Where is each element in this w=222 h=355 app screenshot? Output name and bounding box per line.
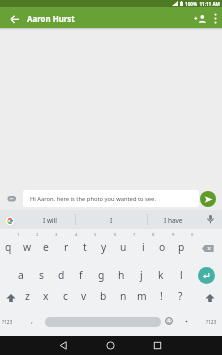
staticText: 1 bbox=[17, 232, 20, 238]
button[interactable]: s bbox=[30, 266, 52, 284]
staticText: 0 bbox=[191, 232, 194, 238]
button[interactable]: r bbox=[55, 238, 77, 256]
button[interactable]: 3 bbox=[45, 226, 67, 244]
button[interactable]: f bbox=[70, 266, 92, 284]
staticText: t bbox=[83, 240, 87, 254]
button[interactable] bbox=[45, 317, 161, 327]
button[interactable]: ?123 bbox=[200, 313, 222, 331]
staticText: u bbox=[120, 240, 127, 254]
button[interactable] bbox=[56, 338, 71, 353]
button[interactable] bbox=[4, 292, 18, 306]
staticText: a bbox=[18, 268, 24, 282]
staticText: k bbox=[158, 268, 164, 282]
staticText: p bbox=[178, 240, 185, 254]
button[interactable]: l bbox=[170, 266, 192, 284]
staticText: 6 bbox=[114, 232, 117, 238]
button[interactable]: b bbox=[92, 287, 114, 305]
staticText: ? bbox=[178, 289, 183, 303]
staticText: 4 bbox=[75, 232, 78, 238]
button[interactable]: e bbox=[35, 238, 57, 256]
button[interactable]: p bbox=[170, 238, 192, 256]
staticText: h bbox=[118, 268, 125, 282]
button[interactable] bbox=[203, 292, 217, 306]
staticText: g bbox=[98, 268, 105, 282]
staticText: I have bbox=[164, 216, 183, 225]
button[interactable]: 9 bbox=[162, 226, 184, 244]
button[interactable]: w bbox=[16, 238, 38, 256]
button[interactable]: I bbox=[100, 211, 122, 229]
button[interactable] bbox=[209, 11, 221, 27]
button[interactable] bbox=[7, 195, 17, 203]
button[interactable]: 2 bbox=[26, 226, 48, 244]
staticText: , bbox=[31, 316, 33, 326]
button[interactable]: k bbox=[150, 266, 172, 284]
staticText: j bbox=[140, 268, 143, 282]
staticText: Aaron Hurst bbox=[27, 14, 75, 25]
staticText: 5 bbox=[94, 232, 97, 238]
staticText: 2 bbox=[36, 232, 39, 238]
staticText: y bbox=[101, 240, 107, 254]
staticText: I will bbox=[43, 216, 58, 225]
button[interactable]: j bbox=[130, 266, 152, 284]
button[interactable] bbox=[150, 338, 165, 353]
staticText: 7 bbox=[133, 232, 136, 238]
button[interactable] bbox=[203, 212, 218, 227]
button[interactable]: 7 bbox=[123, 226, 145, 244]
button[interactable]: n bbox=[112, 287, 134, 305]
button[interactable]: 5 bbox=[84, 226, 106, 244]
button[interactable]: z bbox=[16, 287, 38, 305]
button[interactable]: 4 bbox=[65, 226, 87, 244]
button[interactable]: q bbox=[0, 238, 19, 256]
button[interactable]: 1 bbox=[7, 226, 29, 244]
button[interactable]: 0 bbox=[181, 226, 203, 244]
button[interactable]: u bbox=[112, 238, 134, 256]
staticText: i bbox=[142, 240, 145, 254]
staticText: z bbox=[25, 289, 30, 303]
button[interactable]: ! bbox=[150, 287, 172, 305]
staticText: m bbox=[137, 289, 147, 303]
button[interactable]: y bbox=[93, 238, 115, 256]
button[interactable]: o bbox=[151, 238, 173, 256]
button[interactable]: h bbox=[110, 266, 132, 284]
button[interactable] bbox=[198, 267, 215, 284]
button[interactable]: ?123 bbox=[0, 313, 18, 331]
staticText: l bbox=[180, 268, 183, 282]
staticText: 8 bbox=[152, 232, 155, 238]
staticText: o bbox=[159, 240, 166, 254]
button[interactable] bbox=[103, 338, 118, 353]
button[interactable] bbox=[200, 191, 216, 207]
staticText: 9 bbox=[172, 232, 175, 238]
staticText: ! bbox=[160, 289, 163, 303]
button[interactable]: t bbox=[74, 238, 96, 256]
button[interactable]: 8 bbox=[142, 226, 164, 244]
button[interactable] bbox=[7, 11, 23, 25]
button[interactable]: x bbox=[35, 287, 57, 305]
button[interactable]: Hi Aaron, here is the photo you wanted t… bbox=[23, 190, 199, 207]
staticText: v bbox=[81, 289, 87, 303]
button[interactable]: m bbox=[131, 287, 153, 305]
button[interactable]: i bbox=[132, 238, 154, 256]
button[interactable]: c bbox=[54, 287, 76, 305]
staticText: w bbox=[23, 240, 32, 254]
staticText: f bbox=[79, 268, 83, 282]
staticText: 100% 11:11 AM bbox=[185, 1, 220, 7]
button[interactable]: d bbox=[50, 266, 72, 284]
button[interactable] bbox=[163, 315, 175, 327]
button[interactable]: a bbox=[10, 266, 32, 284]
button[interactable]: 6 bbox=[104, 226, 126, 244]
button[interactable]: ? bbox=[169, 287, 191, 305]
button[interactable]: I have bbox=[162, 211, 184, 229]
staticText: s bbox=[39, 268, 44, 282]
button[interactable]: v bbox=[73, 287, 95, 305]
staticText: b bbox=[100, 289, 107, 303]
button[interactable] bbox=[193, 13, 207, 25]
button[interactable]: , bbox=[21, 312, 43, 330]
button[interactable]: g bbox=[90, 266, 112, 284]
staticText: q bbox=[5, 240, 12, 254]
button[interactable] bbox=[200, 242, 216, 254]
button[interactable] bbox=[4, 215, 17, 228]
staticText: c bbox=[63, 289, 68, 303]
button[interactable]: I will bbox=[39, 211, 61, 229]
staticText: n bbox=[120, 289, 127, 303]
staticText: 3 bbox=[55, 232, 58, 238]
